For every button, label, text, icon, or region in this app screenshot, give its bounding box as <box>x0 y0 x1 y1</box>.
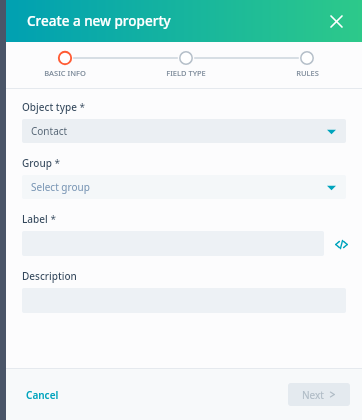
button[interactable]: Contact <box>22 119 346 143</box>
staticText: Object type <box>22 100 77 114</box>
staticText: * <box>52 156 61 170</box>
staticText: Create a new property <box>27 12 171 30</box>
staticText: Group <box>22 156 52 170</box>
button[interactable]: Insert code <box>332 235 350 253</box>
staticText: FIELD TYPE <box>166 68 206 78</box>
staticText: Description <box>22 269 77 283</box>
staticText: * <box>48 212 57 226</box>
button[interactable]: Cancel <box>18 383 67 407</box>
staticText: * <box>77 100 86 114</box>
staticText: Select group <box>31 180 327 194</box>
staticText: RULES <box>296 68 319 78</box>
button[interactable]: Next <box>288 383 350 406</box>
staticText: Cancel <box>26 388 59 402</box>
button[interactable]: Close <box>324 9 348 33</box>
staticText: BASIC INFO <box>44 68 86 78</box>
staticText: Contact <box>31 124 327 138</box>
staticText: Label <box>22 212 48 226</box>
staticText: Next <box>302 388 324 402</box>
button[interactable]: Select group <box>22 175 346 199</box>
